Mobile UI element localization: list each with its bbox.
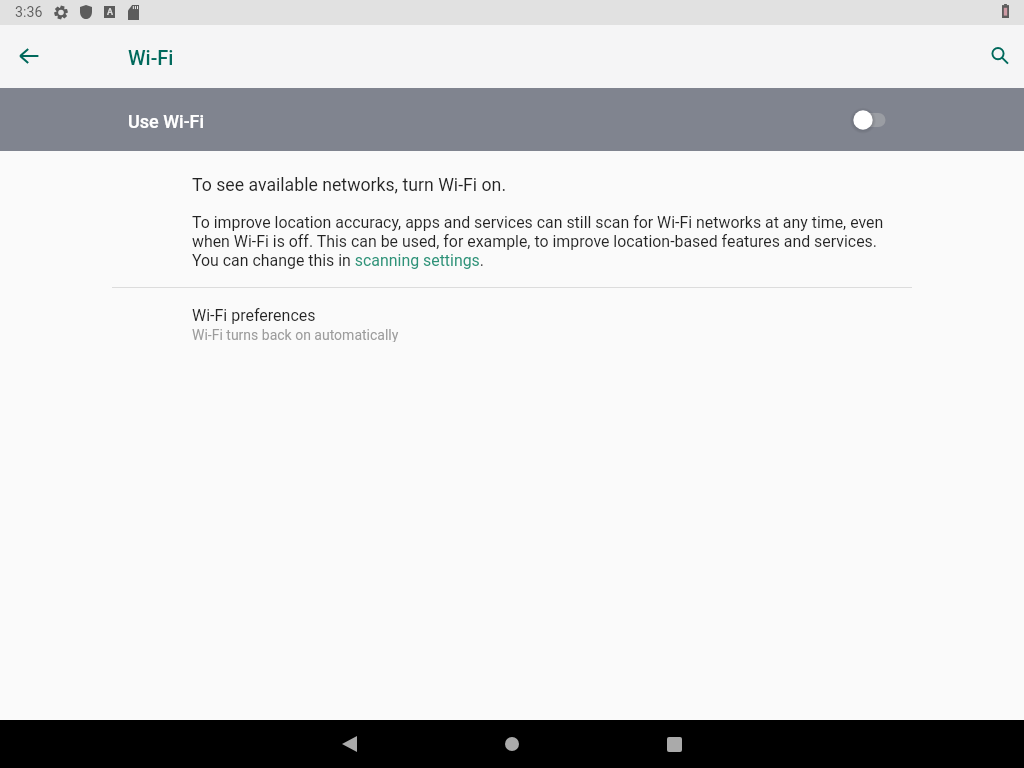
button[interactable]: Use Wi-Fi toggle, off <box>852 106 896 134</box>
staticText: 3:36 <box>15 4 43 21</box>
button[interactable]: Home <box>488 720 536 768</box>
staticText: Wi-Fi turns back on automatically <box>192 327 399 342</box>
staticText: Wi-Fi preferences <box>192 306 316 325</box>
staticText: A <box>107 7 113 18</box>
staticText: Use Wi-Fi <box>128 111 205 132</box>
staticText: To see available networks, turn Wi-Fi on… <box>192 175 507 196</box>
button[interactable]: Recent apps <box>650 720 698 768</box>
button[interactable]: Wi-Fi preferences <box>0 288 1024 356</box>
button[interactable]: Search <box>980 36 1020 76</box>
button[interactable]: Use Wi-Fi <box>0 88 1024 151</box>
button[interactable]: Navigate up <box>9 36 49 76</box>
button[interactable]: Back <box>325 720 373 768</box>
staticText: To improve location accuracy, apps and s… <box>192 213 889 270</box>
staticText: Wi-Fi <box>128 46 174 69</box>
